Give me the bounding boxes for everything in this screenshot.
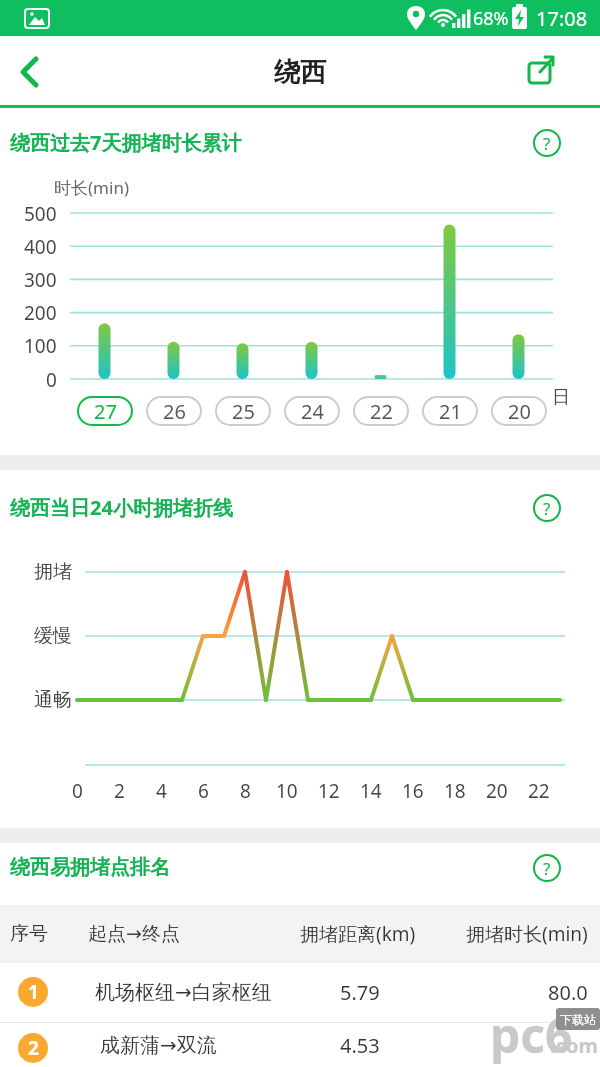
staticText: 5.79 [340, 979, 380, 1006]
staticText: 20 [486, 778, 508, 802]
staticText: 下载站 [560, 1012, 596, 1027]
staticText: 22 [528, 778, 550, 802]
staticText: 26 [163, 398, 186, 425]
staticText: 绕西过去7天拥堵时长累计 [10, 129, 242, 156]
button[interactable]: ? [533, 854, 561, 882]
staticText: 22 [370, 398, 393, 425]
staticText: ? [543, 497, 551, 520]
staticText: 拥堵 [34, 560, 72, 584]
staticText: 绕西当日24小时拥堵折线 [10, 494, 233, 521]
staticText: 4.53 [340, 1032, 380, 1059]
staticText: ? [543, 132, 551, 155]
button[interactable]: ? [533, 129, 561, 157]
staticText: 21 [439, 398, 462, 425]
button[interactable]: 27 [77, 396, 133, 426]
staticText: 20 [508, 398, 531, 425]
staticText: 时长(min) [54, 176, 129, 198]
staticText: 6 [198, 778, 209, 802]
button[interactable]: 22 [353, 396, 409, 426]
button[interactable] [0, 36, 600, 107]
staticText: 绕西易拥堵点排名 [10, 855, 170, 880]
staticText: 14 [360, 778, 382, 802]
staticText: 通畅 [34, 688, 72, 712]
staticText: 成新蒲→双流 [100, 1033, 217, 1058]
staticText: 200 [24, 300, 57, 324]
staticText: 拥堵时长(min) [466, 921, 588, 947]
staticText: 300 [24, 267, 57, 291]
staticText: 缓慢 [34, 624, 72, 648]
staticText: 序号 [10, 922, 48, 946]
staticText: 80.0 [548, 979, 588, 1006]
button[interactable]: 20 [491, 396, 547, 426]
staticText: 2 [28, 1035, 39, 1061]
staticText: 拥堵距离(km) [300, 921, 416, 947]
staticText: 16 [402, 778, 424, 802]
button[interactable] [0, 963, 600, 1022]
staticText: 17:08 [536, 5, 588, 31]
button[interactable] [0, 1023, 600, 1067]
staticText: 8 [240, 778, 251, 802]
staticText: 18 [444, 778, 466, 802]
staticText: 100 [24, 333, 57, 357]
button[interactable]: 26 [146, 396, 202, 426]
staticText: 24 [301, 398, 324, 425]
staticText: 日 [552, 386, 570, 409]
button[interactable]: ? [533, 494, 561, 522]
button[interactable]: 24 [284, 396, 340, 426]
button[interactable]: 21 [422, 396, 478, 426]
staticText: 12 [318, 778, 340, 802]
staticText: 0 [72, 778, 83, 802]
staticText: 机场枢纽→白家枢纽 [95, 980, 272, 1005]
staticText: .com [550, 1032, 598, 1058]
staticText: pc6 [490, 1002, 573, 1064]
staticText: 4 [156, 778, 167, 802]
staticText: 400 [24, 234, 57, 258]
button[interactable]: 25 [215, 396, 271, 426]
staticText: 0 [46, 367, 57, 391]
staticText: 500 [24, 201, 57, 225]
staticText: 绕西 [274, 56, 326, 89]
staticText: ? [543, 857, 551, 880]
staticText: 起点→终点 [88, 922, 180, 946]
staticText: 27 [94, 398, 117, 425]
staticText: 25 [232, 398, 255, 425]
staticText: 1 [28, 979, 39, 1005]
staticText: 68% [473, 6, 509, 30]
staticText: 10 [276, 778, 298, 802]
staticText: 2 [114, 778, 125, 802]
